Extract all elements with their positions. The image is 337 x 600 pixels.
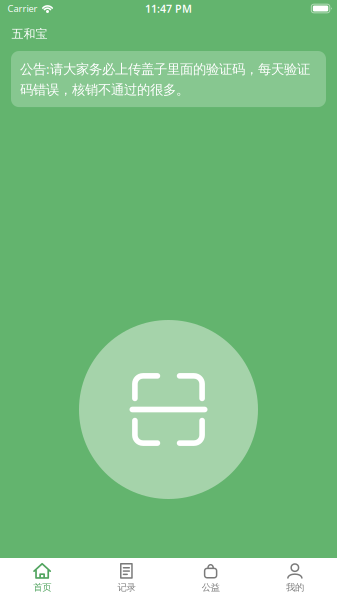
button[interactable]: 扫一扫 [79, 320, 258, 499]
staticText: 首页 [33, 582, 51, 593]
button[interactable]: 我的 [253, 558, 337, 600]
staticText: 公益 [202, 582, 220, 593]
staticText: 11:47 PM [145, 1, 192, 16]
staticText: 我的 [286, 582, 304, 593]
staticText: Carrier [7, 2, 37, 15]
staticText: 记录 [117, 582, 135, 593]
staticText: 五和宝 [11, 27, 47, 41]
staticText: 公告:请大家务必上传盖子里面的验证码，每天验证码错误，核销不通过的很多。 [20, 60, 310, 98]
button[interactable]: 公益 [168, 558, 253, 600]
button[interactable]: 首页 [0, 558, 84, 600]
button[interactable]: 记录 [84, 558, 168, 600]
